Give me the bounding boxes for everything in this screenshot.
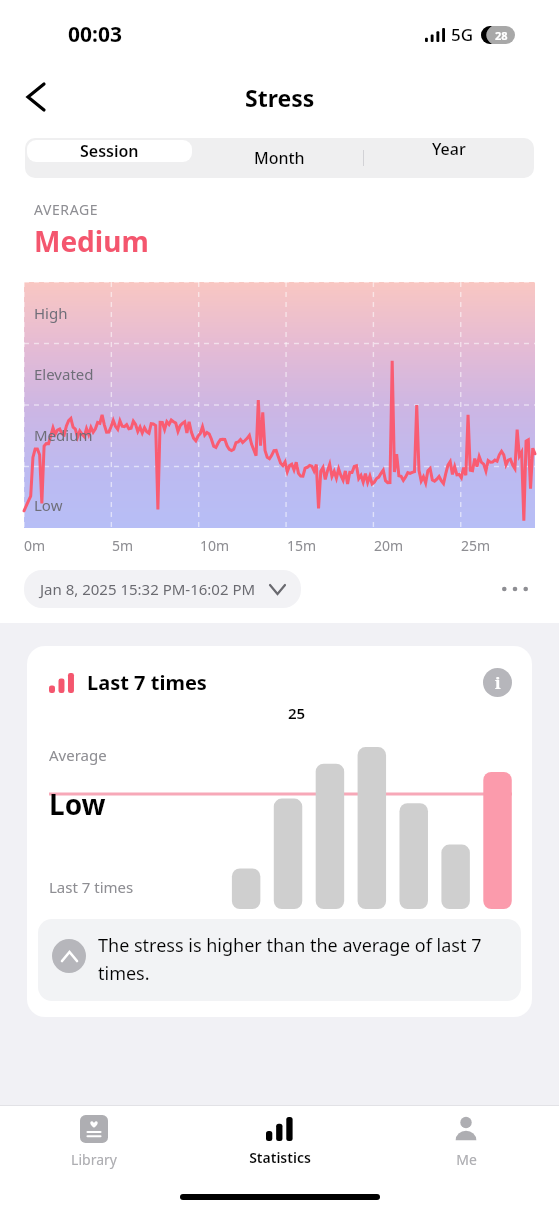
staticText: Statistics [249, 1148, 311, 1167]
button[interactable]: Statistics [187, 1106, 373, 1178]
staticText: Elevated [34, 364, 94, 384]
staticText: AVERAGE [34, 200, 99, 219]
button[interactable]: Jan 8, 2025 15:32 PM-16:02 PM [24, 570, 301, 608]
staticText: Last 7 times [49, 877, 134, 897]
staticText: The stress is higher than the average of… [98, 933, 507, 985]
staticText: i [495, 672, 501, 694]
staticText: Stress [245, 82, 315, 113]
staticText: 5m [112, 536, 134, 555]
button[interactable]: Library [0, 1106, 187, 1178]
staticText: 25 [288, 703, 306, 723]
staticText: Library [71, 1150, 117, 1169]
staticText: Last 7 times [87, 669, 207, 696]
button[interactable]: Session [27, 140, 192, 162]
staticText: 00:03 [68, 20, 122, 49]
staticText: 5G [451, 23, 474, 46]
staticText: 28 [495, 28, 508, 43]
staticText: Average [49, 745, 107, 765]
staticText: Low [49, 785, 106, 823]
staticText: 10m [200, 536, 230, 555]
staticText: Medium [34, 222, 149, 260]
staticText: Medium [34, 425, 93, 445]
button[interactable]: Back [14, 75, 58, 119]
button[interactable]: Month [194, 138, 364, 178]
button[interactable]: Year [364, 138, 534, 160]
staticText: 15m [287, 536, 317, 555]
staticText: High [34, 303, 68, 323]
button[interactable]: Me [373, 1106, 559, 1178]
staticText: 20m [374, 536, 404, 555]
staticText: 25m [461, 536, 491, 555]
button[interactable]: More options [495, 569, 535, 609]
staticText: Session [80, 140, 139, 162]
staticText: Low [34, 495, 63, 515]
button[interactable]: Info [483, 668, 512, 697]
staticText: Jan 8, 2025 15:32 PM-16:02 PM [40, 579, 256, 599]
staticText: Year [432, 138, 466, 160]
button[interactable]: The stress is higher than the average of… [38, 919, 521, 1001]
staticText: Month [254, 147, 305, 169]
staticText: 0m [24, 536, 46, 555]
staticText: Me [456, 1150, 477, 1169]
